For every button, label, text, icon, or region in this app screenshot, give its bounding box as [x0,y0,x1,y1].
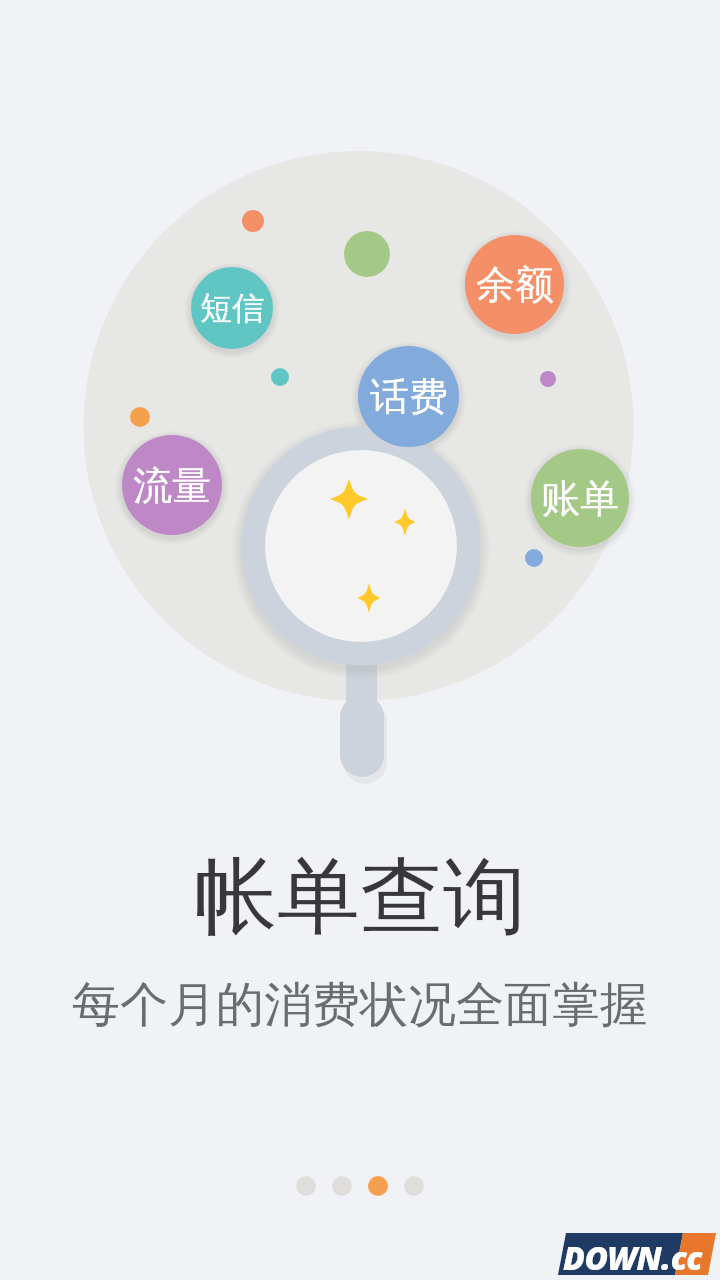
staticText: 流量 [133,461,211,510]
button[interactable]: 余额 [465,235,564,334]
staticText: 账单 [541,474,619,523]
button[interactable]: 流量 [122,435,222,535]
button[interactable]: Go to page 3 [368,1176,388,1196]
staticText: DOWN.cc [563,1236,702,1280]
button[interactable]: 短信 [191,267,273,349]
button[interactable]: Go to page 2 [332,1176,352,1196]
button[interactable]: Go to page 1 [296,1176,316,1196]
button[interactable]: DOWN.cc watermark [558,1233,718,1277]
staticText: 短信 [200,288,264,328]
button[interactable]: 账单 [531,449,629,547]
staticText: 余额 [476,260,554,309]
staticText: 话费 [370,372,448,421]
button[interactable]: 话费 [358,346,459,447]
button[interactable]: Go to page 4 [404,1176,424,1196]
staticText: 每个月的消费状况全面掌握 [72,975,648,1035]
staticText: 帐单查询 [194,845,526,950]
